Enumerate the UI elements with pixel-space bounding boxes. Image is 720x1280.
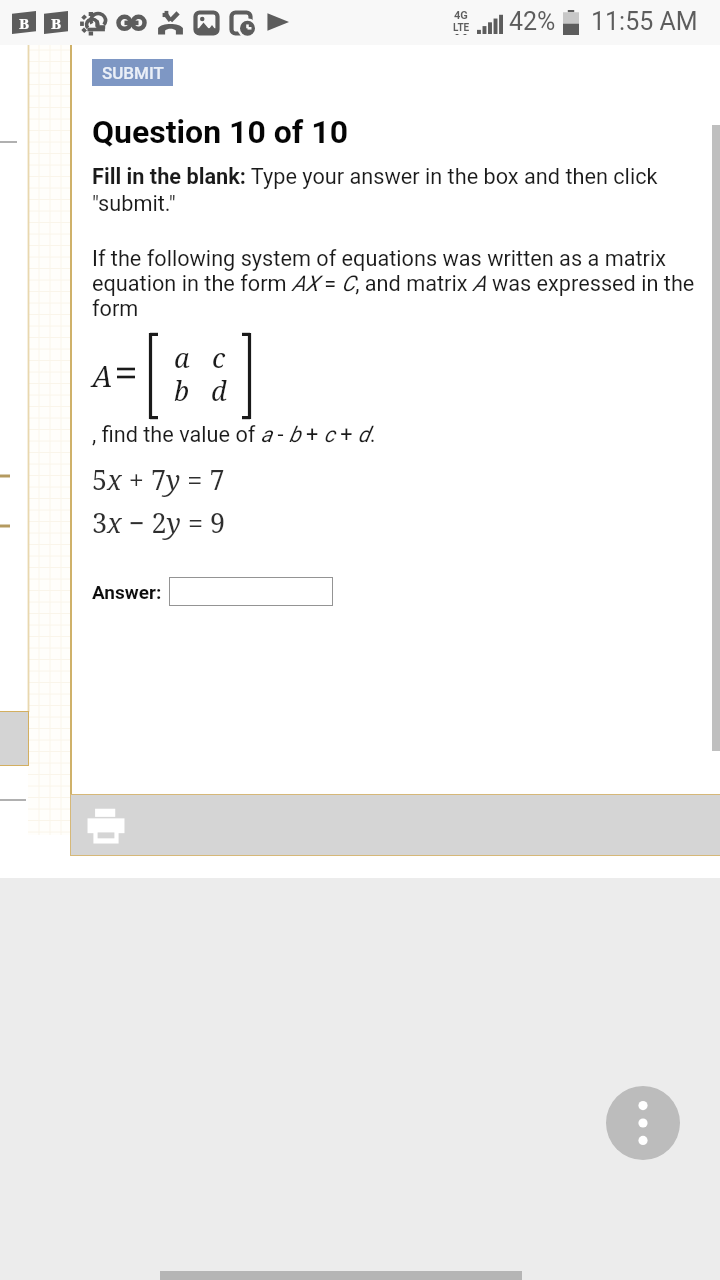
staticText: 5x + 7y = 7 (92, 461, 225, 498)
staticText: LTE (453, 22, 470, 34)
staticText: Answer: (92, 581, 162, 603)
staticText: 11:55 AM (591, 7, 698, 36)
button[interactable]: SUBMIT (92, 59, 173, 86)
staticText: If the following system of equations was… (92, 246, 698, 321)
staticText: B (19, 13, 30, 33)
staticText: SUBMIT (102, 63, 164, 83)
staticText: Fill in the blank: Type your answer in t… (92, 164, 698, 217)
button[interactable]: Print (84, 804, 128, 848)
staticText: Question 10 of 10 (92, 113, 348, 151)
staticText: , find the value of a - b + c + d. (92, 422, 376, 447)
staticText: a (174, 339, 190, 376)
button[interactable]: More options (606, 1086, 680, 1160)
staticText: 4G (454, 9, 468, 22)
button[interactable] (169, 577, 333, 606)
staticText: c (212, 339, 226, 376)
staticText: B (51, 13, 62, 33)
staticText: 3x − 2y = 9 (92, 504, 226, 541)
staticText: A (92, 356, 113, 395)
staticText: d (211, 372, 227, 409)
staticText: b (174, 372, 190, 409)
staticText: 42% (509, 7, 556, 36)
